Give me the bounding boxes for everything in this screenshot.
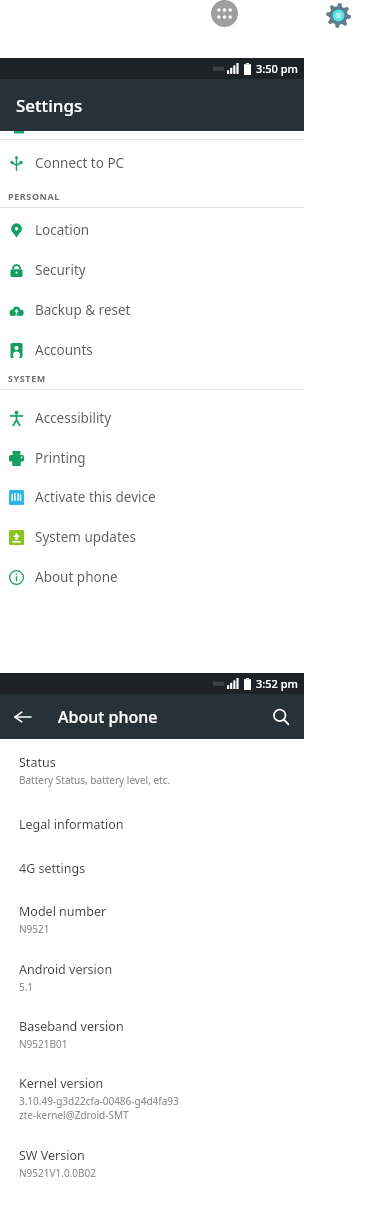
button[interactable]: Location [0, 213, 304, 247]
button[interactable]: Printing [0, 441, 304, 475]
staticText: SW Version [19, 1147, 85, 1164]
button[interactable]: Backup & reset [0, 293, 304, 327]
staticText: Battery Status, battery level, etc. [19, 773, 171, 787]
staticText: PERSONAL [8, 190, 60, 202]
staticText: Settings [16, 94, 83, 117]
button[interactable]: Status [0, 754, 304, 787]
staticText: 3.10.49-g3d22cfa-00486-g4d4fa93 [19, 1094, 179, 1108]
button[interactable]: Settings [325, 2, 352, 29]
button[interactable]: Connect to PC [0, 146, 304, 180]
staticText: Accounts [35, 341, 93, 359]
button[interactable]: Accounts [0, 333, 304, 367]
button[interactable]: Search [266, 702, 296, 732]
staticText: 3:52 pm [256, 676, 298, 691]
staticText: 4G settings [19, 860, 86, 877]
staticText: 3:50 pm [256, 61, 298, 76]
button[interactable]: Android version [0, 961, 304, 994]
staticText: Accessibility [35, 409, 112, 427]
staticText: N9521 [19, 922, 50, 936]
staticText: 5.1 [19, 980, 34, 994]
staticText: N9521B01 [19, 1037, 68, 1051]
staticText: Printing [35, 449, 86, 467]
button[interactable]: Security [0, 253, 304, 287]
staticText: Baseband version [19, 1018, 124, 1035]
button[interactable]: Back [8, 702, 38, 732]
button[interactable]: About phone [0, 560, 304, 594]
button[interactable]: Legal information [0, 816, 304, 833]
staticText: Android version [19, 961, 113, 978]
staticText: Backup & reset [35, 301, 131, 319]
staticText: Security [35, 261, 86, 279]
staticText: About phone [35, 568, 118, 586]
staticText: About phone [58, 706, 158, 728]
staticText: System updates [35, 528, 136, 546]
button[interactable]: Apps [211, 0, 238, 27]
staticText: Activate this device [35, 488, 156, 506]
button[interactable]: Baseband version [0, 1018, 304, 1051]
staticText: SYSTEM [8, 372, 46, 384]
button[interactable]: Kernel version [0, 1075, 304, 1122]
button[interactable]: 4G settings [0, 860, 304, 877]
button[interactable]: Accessibility [0, 401, 304, 435]
staticText: N9521V1.0.0B02 [19, 1166, 96, 1180]
staticText: Legal information [19, 816, 124, 833]
button[interactable]: SW Version [0, 1147, 304, 1180]
staticText: Location [35, 221, 90, 239]
staticText: zte-kernel@Zdroid-SMT [19, 1108, 129, 1122]
button[interactable]: Activate this device [0, 480, 304, 514]
button[interactable]: Model number [0, 903, 304, 936]
staticText: Model number [19, 903, 107, 920]
staticText: Kernel version [19, 1075, 104, 1092]
staticText: Status [19, 754, 56, 771]
button[interactable]: System updates [0, 520, 304, 554]
staticText: Connect to PC [35, 154, 125, 172]
